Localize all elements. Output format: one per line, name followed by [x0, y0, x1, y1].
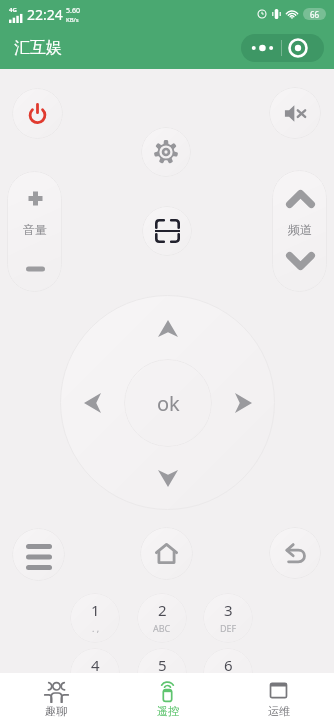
button[interactable]: Volume down	[17, 258, 53, 280]
button[interactable]: 3	[203, 593, 253, 643]
staticText: 4	[91, 655, 100, 675]
button[interactable]: Settings	[141, 127, 191, 177]
staticText: ABC	[153, 622, 171, 634]
staticText: 66	[310, 9, 320, 20]
staticText: 3	[224, 600, 233, 620]
button[interactable]: 运维	[223, 673, 334, 723]
staticText: 6	[224, 655, 233, 675]
button[interactable]: Volume up	[17, 182, 53, 214]
button[interactable]: Channel up	[279, 183, 321, 215]
button[interactable]: Up	[148, 312, 188, 344]
staticText: . ,	[92, 622, 100, 634]
button[interactable]: 5	[137, 648, 187, 698]
button[interactable]: ok	[124, 359, 212, 447]
staticText: 频道	[288, 222, 312, 237]
staticText: JKL	[156, 677, 169, 689]
button[interactable]: Down	[148, 462, 188, 494]
staticText: 运维	[268, 704, 290, 718]
staticText: 趣聊	[45, 704, 67, 718]
staticText: 4G	[9, 6, 17, 14]
staticText: 汇互娱	[14, 38, 62, 58]
button[interactable]: 4	[70, 648, 120, 698]
button[interactable]: Power	[12, 88, 63, 139]
staticText: DEF	[220, 622, 237, 634]
button[interactable]: 2	[137, 593, 187, 643]
staticText: 音量	[23, 222, 47, 237]
staticText: 1	[91, 600, 100, 620]
staticText: 2	[158, 600, 167, 620]
button[interactable]: Mute	[269, 87, 321, 139]
staticText: 22:24	[27, 5, 63, 24]
button[interactable]: Menu	[12, 528, 65, 581]
button[interactable]: Left	[76, 383, 108, 423]
button[interactable]: 1	[70, 593, 120, 643]
staticText: 5.60	[66, 6, 80, 16]
button[interactable]: 趣聊	[0, 673, 112, 723]
staticText: 遥控	[157, 704, 179, 718]
button[interactable]: Home	[140, 527, 193, 580]
button[interactable]: Channel down	[279, 245, 321, 277]
button[interactable]: 6	[203, 648, 253, 698]
button[interactable]: Right	[227, 383, 259, 423]
staticText: KB/s	[66, 16, 79, 24]
button[interactable]: 遥控	[112, 673, 223, 723]
staticText: 5	[158, 655, 167, 675]
button[interactable]: Back	[269, 527, 321, 579]
staticText: ok	[157, 390, 180, 417]
button[interactable]: Menu	[241, 34, 324, 62]
button[interactable]: Scan	[142, 206, 192, 256]
